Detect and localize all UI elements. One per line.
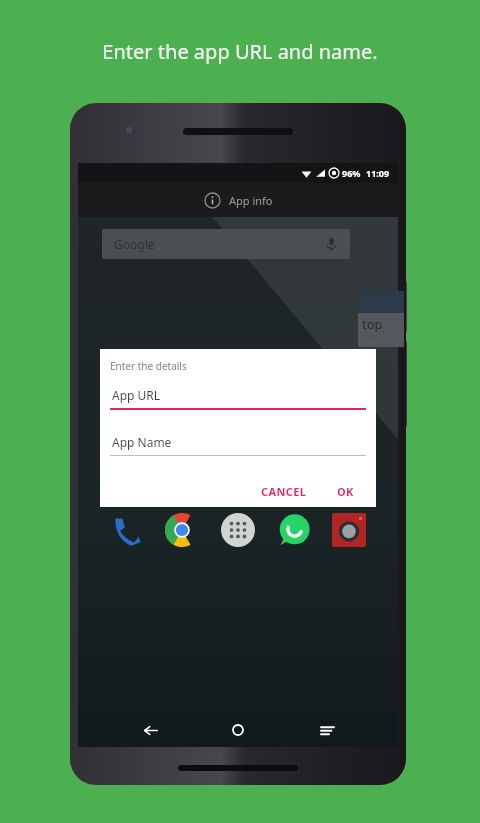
staticText: App Name xyxy=(112,434,172,450)
staticText: Enter the app URL and name. xyxy=(102,38,378,65)
button[interactable]: Chrome xyxy=(161,509,203,551)
button[interactable]: App URL xyxy=(110,387,366,410)
staticText: 11:09 xyxy=(366,167,390,179)
staticText: Google xyxy=(118,435,142,445)
button[interactable]: Recents xyxy=(310,713,344,747)
staticText: App URL xyxy=(112,387,161,403)
button[interactable]: Home xyxy=(221,713,255,747)
button[interactable]: Google xyxy=(102,229,350,259)
button[interactable]: Google xyxy=(113,399,147,447)
button[interactable]: App info xyxy=(78,183,398,217)
button[interactable]: Back xyxy=(133,713,167,747)
staticText: Enter the details xyxy=(110,359,187,373)
button[interactable]: Cal xyxy=(329,399,363,447)
button[interactable]: WhatsApp xyxy=(273,509,315,551)
staticText: top xyxy=(362,315,383,333)
button[interactable]: Apps xyxy=(217,509,259,551)
button[interactable]: Social xyxy=(165,399,199,447)
button[interactable]: Phone xyxy=(106,509,148,551)
staticText: CANCEL xyxy=(261,484,307,499)
button[interactable]: Camera xyxy=(328,509,370,551)
button[interactable]: OK xyxy=(329,478,362,505)
staticText: OK xyxy=(337,484,354,499)
other: Voice search xyxy=(325,238,338,251)
staticText: Google xyxy=(114,236,155,252)
button[interactable]: Messaging xyxy=(271,399,311,447)
staticText: 96% xyxy=(342,167,361,179)
button[interactable]: CANCEL xyxy=(253,478,315,505)
staticText: App info xyxy=(229,193,273,208)
button[interactable]: QuickPic xyxy=(218,399,252,447)
button[interactable]: App Name xyxy=(110,434,366,456)
other: App info xyxy=(204,192,221,209)
